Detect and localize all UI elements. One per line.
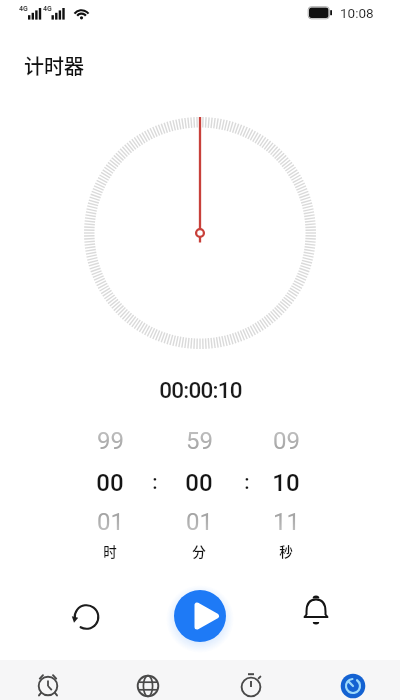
staticText: 秒 — [279, 541, 293, 561]
staticText: 分 — [192, 541, 206, 561]
staticText: : — [152, 470, 158, 493]
staticText: 01 — [186, 508, 213, 536]
button[interactable] — [246, 425, 326, 540]
button[interactable] — [200, 660, 300, 700]
staticText: 11 — [273, 508, 300, 536]
staticText: 00:00:10 — [159, 377, 242, 403]
staticText: 00 — [185, 469, 213, 497]
staticText: 00 — [96, 469, 124, 497]
button[interactable] — [300, 660, 400, 700]
button[interactable] — [0, 660, 100, 700]
button[interactable] — [174, 590, 226, 642]
staticText: 10:08 — [340, 5, 374, 21]
staticText: 4G — [43, 5, 52, 13]
staticText: 09 — [273, 427, 300, 455]
staticText: : — [244, 470, 250, 493]
button[interactable] — [70, 425, 150, 540]
staticText: 01 — [97, 508, 124, 536]
button[interactable] — [62, 592, 111, 641]
button[interactable] — [291, 592, 340, 641]
staticText: 10 — [272, 469, 300, 497]
button[interactable] — [100, 660, 200, 700]
staticText: 59 — [186, 427, 213, 455]
button[interactable] — [159, 425, 239, 540]
staticText: 计时器 — [24, 51, 84, 80]
staticText: 4G — [19, 5, 28, 13]
staticText: 99 — [97, 427, 124, 455]
staticText: 时 — [103, 541, 117, 561]
